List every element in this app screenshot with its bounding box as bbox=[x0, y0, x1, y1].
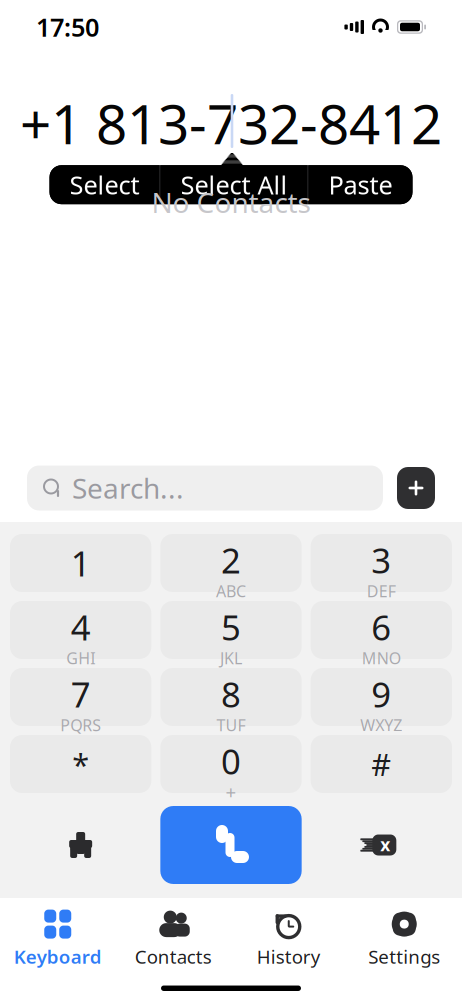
staticText: WXYZ bbox=[360, 714, 402, 736]
button[interactable]: 6 bbox=[311, 601, 452, 659]
staticText: 5 bbox=[221, 604, 241, 650]
button[interactable]: 7 bbox=[10, 668, 151, 726]
button[interactable]: # bbox=[311, 735, 452, 793]
button[interactable]: Select All bbox=[160, 165, 307, 204]
staticText: Settings bbox=[368, 944, 440, 969]
staticText: 3 bbox=[371, 537, 391, 583]
button[interactable]: * bbox=[10, 735, 151, 793]
staticText: GHI bbox=[66, 647, 95, 669]
staticText: + bbox=[225, 780, 236, 804]
staticText: 0 bbox=[221, 738, 241, 784]
button[interactable]: 5 bbox=[160, 601, 302, 659]
button[interactable]: 1 bbox=[10, 534, 151, 592]
staticText: Search... bbox=[72, 469, 184, 507]
staticText: 6 bbox=[371, 604, 391, 650]
button[interactable]: Favorites bbox=[10, 806, 151, 884]
button[interactable]: 9 bbox=[311, 668, 452, 726]
staticText: Select bbox=[69, 168, 139, 201]
button[interactable]: 4 bbox=[10, 601, 151, 659]
staticText: MNO bbox=[362, 647, 401, 669]
staticText: JKL bbox=[220, 647, 242, 669]
staticText: 4 bbox=[71, 604, 91, 650]
staticText: 17:50 bbox=[36, 10, 99, 44]
staticText: 1 bbox=[71, 540, 91, 586]
staticText: 9 bbox=[371, 671, 391, 717]
staticText: ABC bbox=[216, 580, 246, 602]
staticText: Select All bbox=[180, 168, 287, 201]
button[interactable]: 3 bbox=[311, 534, 452, 592]
button[interactable]: Add contact bbox=[397, 467, 435, 509]
button[interactable]: Contacts bbox=[115, 909, 231, 969]
button[interactable]: Settings bbox=[346, 909, 462, 969]
staticText: History bbox=[257, 944, 321, 969]
staticText: DEF bbox=[367, 580, 396, 602]
button[interactable]: Paste bbox=[308, 165, 412, 204]
staticText: Paste bbox=[328, 168, 392, 201]
button[interactable]: Keyboard bbox=[0, 909, 115, 969]
staticText: PQRS bbox=[60, 714, 101, 736]
staticText: x bbox=[380, 833, 390, 856]
button[interactable]: 8 bbox=[160, 668, 302, 726]
staticText: +1 813-732-8412 bbox=[20, 87, 442, 159]
button[interactable]: Delete bbox=[311, 806, 452, 884]
staticText: 8 bbox=[221, 671, 241, 717]
button[interactable]: Search... bbox=[27, 465, 383, 510]
staticText: No Contacts bbox=[151, 184, 310, 221]
staticText: 2 bbox=[221, 537, 241, 583]
button[interactable]: 0 bbox=[160, 735, 302, 793]
staticText: # bbox=[371, 744, 391, 784]
staticText: * bbox=[72, 744, 89, 784]
staticText: Keyboard bbox=[14, 944, 102, 969]
staticText: 7 bbox=[71, 671, 91, 717]
button[interactable]: 2 bbox=[160, 534, 302, 592]
staticText: TUF bbox=[216, 714, 245, 736]
button[interactable]: Call bbox=[160, 806, 302, 884]
button[interactable]: Select bbox=[49, 165, 159, 204]
button[interactable]: History bbox=[231, 909, 346, 969]
staticText: Contacts bbox=[135, 944, 212, 969]
